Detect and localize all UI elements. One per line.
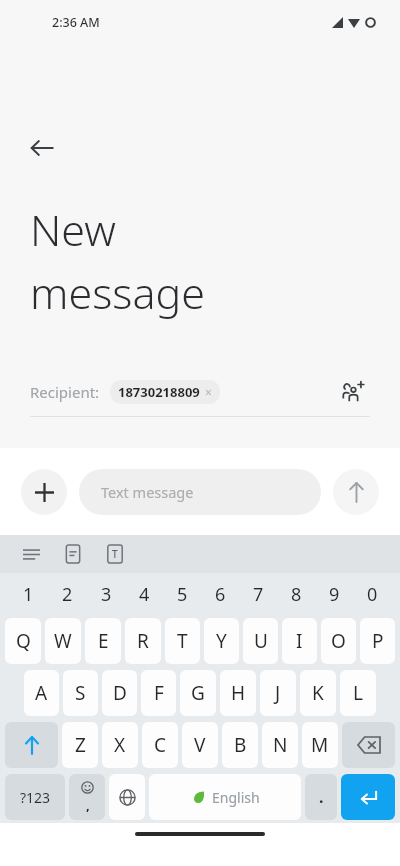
staticText: K xyxy=(312,680,324,706)
button[interactable]: M xyxy=(302,722,338,768)
button[interactable]: G xyxy=(180,670,216,716)
button[interactable]: Send xyxy=(333,469,379,515)
button[interactable]: ?123 xyxy=(5,774,65,820)
button[interactable]: 5 xyxy=(163,573,201,615)
staticText: New xyxy=(30,200,116,259)
staticText: 2 xyxy=(62,582,73,607)
staticText: F xyxy=(154,680,164,706)
button[interactable]: T xyxy=(165,618,200,664)
staticText: U xyxy=(254,628,268,654)
button[interactable]: English xyxy=(149,774,301,820)
button[interactable]: Backspace xyxy=(342,722,395,768)
button[interactable]: 1 xyxy=(9,573,48,615)
staticText: Y xyxy=(216,628,227,654)
button[interactable]: Clipboard xyxy=(58,539,88,569)
button[interactable]: 4 xyxy=(125,573,163,615)
button[interactable]: Emoji xyxy=(69,774,105,820)
button[interactable]: Q xyxy=(5,618,41,664)
button[interactable]: O xyxy=(321,618,356,664)
staticText: Q xyxy=(16,628,31,654)
button[interactable]: V xyxy=(182,722,218,768)
button[interactable]: Text message xyxy=(79,469,321,515)
button[interactable]: Enter xyxy=(341,774,395,820)
staticText: 4 xyxy=(139,582,150,607)
button[interactable]: 7 xyxy=(239,573,277,615)
staticText: ?123 xyxy=(20,788,51,807)
button[interactable]: Text options xyxy=(100,539,130,569)
staticText: 1 xyxy=(23,582,34,607)
button[interactable]: Menu xyxy=(16,539,46,569)
staticText: T xyxy=(112,547,118,561)
staticText: R xyxy=(137,628,149,654)
staticText: L xyxy=(353,680,363,706)
staticText: Recipient: xyxy=(30,382,100,402)
staticText: × xyxy=(205,384,212,400)
button[interactable]: B xyxy=(222,722,258,768)
button[interactable]: N xyxy=(262,722,298,768)
staticText: D xyxy=(113,680,127,706)
staticText: . xyxy=(319,786,324,808)
staticText: 2:36 AM xyxy=(52,14,100,31)
button[interactable]: R xyxy=(125,618,161,664)
button[interactable]: 6 xyxy=(201,573,239,615)
staticText: 5 xyxy=(177,582,188,607)
button[interactable]: Add recipient xyxy=(336,375,370,409)
staticText: O xyxy=(331,628,346,654)
button[interactable]: C xyxy=(142,722,178,768)
staticText: 3 xyxy=(101,582,112,607)
button[interactable]: D xyxy=(102,670,137,716)
button[interactable]: 8 xyxy=(277,573,315,615)
button[interactable]: Switch language xyxy=(109,774,145,820)
button[interactable]: Shift xyxy=(5,722,58,768)
staticText: X xyxy=(114,732,126,758)
staticText: V xyxy=(194,732,206,758)
staticText: M xyxy=(311,732,329,758)
button[interactable]: Y xyxy=(204,618,239,664)
button[interactable]: Z xyxy=(62,722,98,768)
staticText: message xyxy=(30,263,205,322)
staticText: 18730218809 xyxy=(118,383,200,401)
staticText: 0 xyxy=(367,582,378,607)
staticText: H xyxy=(231,680,246,706)
staticText: , xyxy=(86,796,90,814)
button[interactable]: . xyxy=(305,774,337,820)
button[interactable]: J xyxy=(260,670,296,716)
button[interactable]: X xyxy=(102,722,138,768)
button[interactable]: P xyxy=(360,618,395,664)
button[interactable]: Attach xyxy=(21,469,67,515)
button[interactable]: 2 xyxy=(48,573,87,615)
button[interactable]: S xyxy=(63,670,98,716)
button[interactable]: A xyxy=(24,670,59,716)
button[interactable]: W xyxy=(45,618,81,664)
staticText: English xyxy=(212,788,260,807)
button[interactable]: 9 xyxy=(315,573,353,615)
button[interactable]: 18730218809 xyxy=(110,380,220,404)
staticText: Text message xyxy=(101,482,194,502)
staticText: C xyxy=(154,732,167,758)
button[interactable]: I xyxy=(282,618,317,664)
staticText: W xyxy=(54,628,72,654)
staticText: 6 xyxy=(215,582,226,607)
staticText: T xyxy=(177,628,188,654)
button[interactable]: U xyxy=(243,618,278,664)
button[interactable]: H xyxy=(220,670,256,716)
button[interactable]: L xyxy=(340,670,376,716)
staticText: I xyxy=(296,628,303,654)
staticText: A xyxy=(35,680,48,706)
staticText: B xyxy=(234,732,247,758)
button[interactable]: E xyxy=(85,618,121,664)
button[interactable]: K xyxy=(300,670,336,716)
staticText: E xyxy=(98,628,109,654)
staticText: G xyxy=(191,680,205,706)
staticText: P xyxy=(372,628,384,654)
staticText: N xyxy=(273,732,288,758)
staticText: 8 xyxy=(291,582,302,607)
staticText: Z xyxy=(75,732,86,758)
button[interactable]: 0 xyxy=(353,573,391,615)
button[interactable]: Back xyxy=(18,124,66,172)
button[interactable]: F xyxy=(141,670,176,716)
staticText: J xyxy=(275,680,281,706)
button[interactable]: 3 xyxy=(87,573,125,615)
staticText: 9 xyxy=(329,582,340,607)
staticText: S xyxy=(75,680,86,706)
